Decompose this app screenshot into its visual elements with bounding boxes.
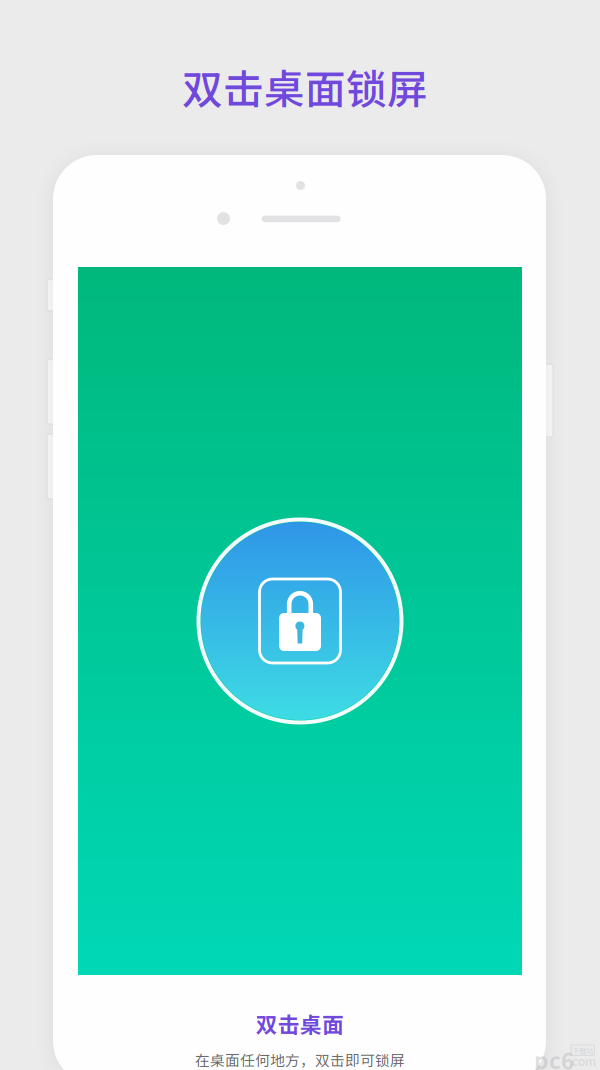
staticText: 下载站 — [572, 1045, 593, 1056]
staticText: pc6 — [534, 1043, 574, 1070]
staticText: .com — [569, 1052, 596, 1069]
staticText: 在桌面任何地方，双击即可锁屏 — [195, 1049, 405, 1070]
staticText: 双击桌面锁屏 — [182, 57, 428, 116]
button[interactable]: 锁屏 — [196, 517, 403, 724]
staticText: 双击桌面 — [256, 1008, 344, 1039]
